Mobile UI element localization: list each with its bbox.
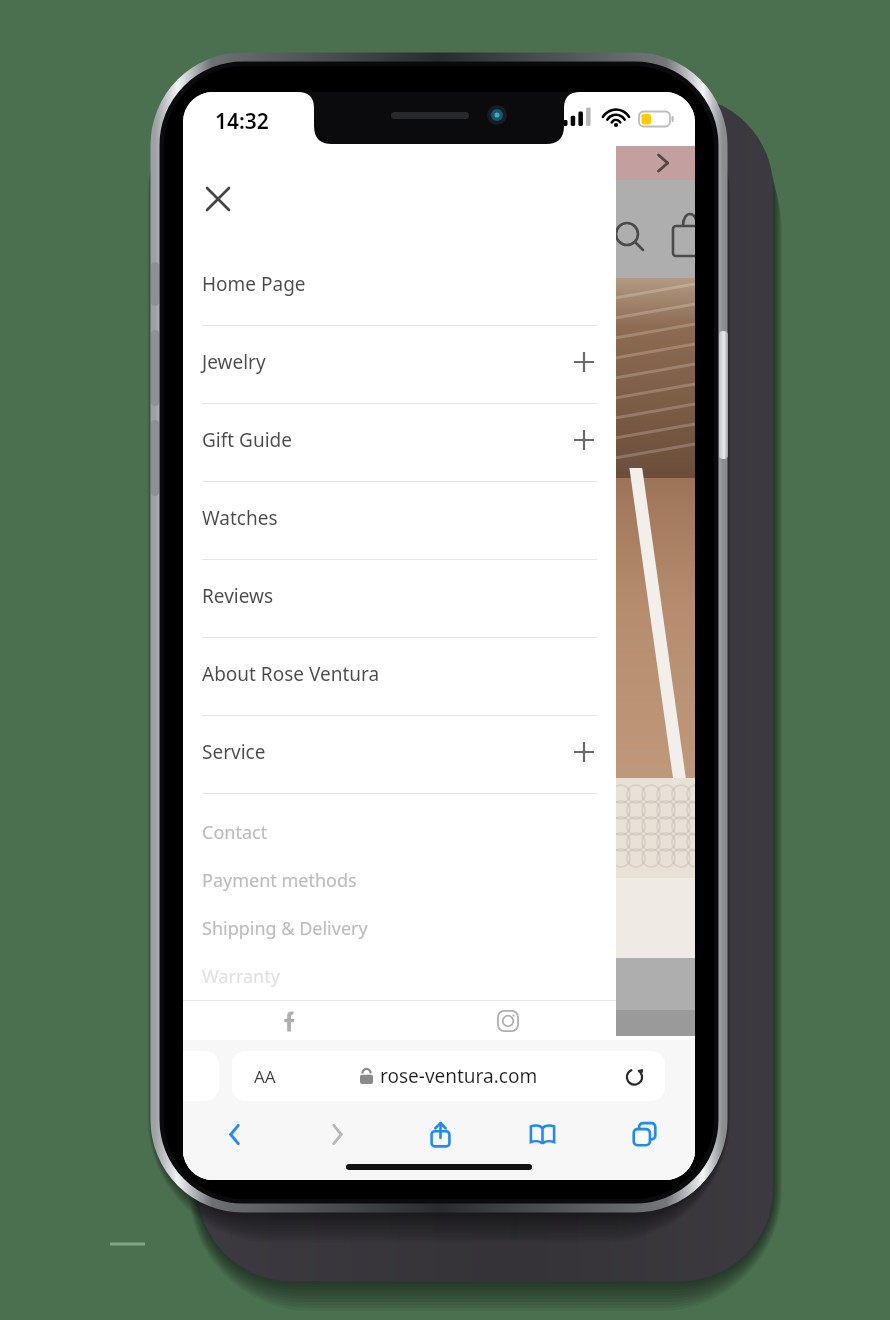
staticText: Contact <box>202 820 268 845</box>
staticText: Jewelry <box>202 349 266 375</box>
staticText: Reviews <box>202 583 274 609</box>
button[interactable]: Close menu <box>191 172 245 226</box>
button[interactable]: Forward <box>286 1108 389 1160</box>
button[interactable]: Back <box>183 1108 286 1160</box>
staticText: Gift Guide <box>202 427 292 453</box>
button[interactable]: Gift Guide <box>183 404 616 482</box>
staticText: Shipping & Delivery <box>202 916 368 941</box>
staticText: Service <box>202 739 266 765</box>
staticText: Payment methods <box>202 868 357 893</box>
button[interactable]: Service <box>183 716 616 794</box>
button[interactable]: Jewelry <box>183 326 616 404</box>
staticText: About Rose Ventura <box>202 661 380 687</box>
button[interactable]: Facebook <box>183 1001 399 1040</box>
staticText: 14:32 <box>215 107 269 136</box>
button[interactable]: Bookmarks <box>491 1108 593 1160</box>
staticText: rose-ventura.com <box>380 1063 538 1089</box>
button[interactable]: Payment methods <box>183 856 616 904</box>
button[interactable]: Warranty <box>183 952 616 1000</box>
button[interactable]: Shipping & Delivery <box>183 904 616 952</box>
button[interactable]: Watches <box>183 482 616 560</box>
button[interactable]: Tabs <box>593 1108 695 1160</box>
staticText: Watches <box>202 505 278 531</box>
button[interactable]: Reviews <box>183 560 616 638</box>
button[interactable]: Contact <box>183 808 616 856</box>
button[interactable]: Instagram <box>399 1001 616 1040</box>
staticText: AA <box>254 1065 276 1088</box>
button[interactable]: Home Page <box>183 248 616 326</box>
button[interactable]: About Rose Ventura <box>183 638 616 716</box>
staticText: Home Page <box>202 271 306 297</box>
staticText: Warranty <box>202 964 280 989</box>
button[interactable]: Reload <box>617 1059 651 1093</box>
button[interactable]: Share <box>389 1108 491 1160</box>
button[interactable]: AA <box>232 1051 665 1101</box>
